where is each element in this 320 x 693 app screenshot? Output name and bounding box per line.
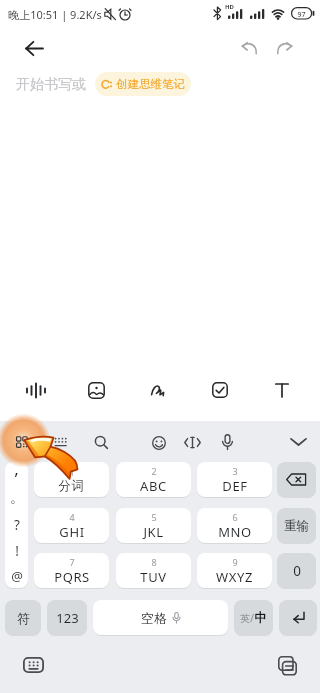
button[interactable] xyxy=(146,378,171,403)
staticText: ! xyxy=(15,542,19,560)
staticText: 123 xyxy=(56,609,79,627)
staticText: 分词 xyxy=(58,478,85,494)
staticText: / xyxy=(250,611,254,625)
button[interactable]: , xyxy=(5,462,28,588)
button[interactable]: 0 xyxy=(277,553,316,588)
staticText: 符 xyxy=(17,610,30,626)
button[interactable] xyxy=(21,37,48,60)
button[interactable]: 6 xyxy=(197,508,272,543)
button[interactable]: 5 xyxy=(116,508,191,543)
staticText: @ xyxy=(11,567,23,585)
button[interactable]: 9 xyxy=(197,553,272,588)
button[interactable] xyxy=(209,2,226,25)
button[interactable] xyxy=(286,434,311,450)
button[interactable]: 4 xyxy=(34,508,109,543)
staticText: 空格 xyxy=(141,610,167,626)
button[interactable] xyxy=(90,431,113,454)
staticText: 9 xyxy=(232,556,238,568)
button[interactable] xyxy=(287,3,319,24)
staticText: 6 xyxy=(232,511,238,523)
staticText: 英 xyxy=(240,612,250,625)
button[interactable]: 空格 xyxy=(93,600,228,635)
staticText: 中 xyxy=(254,610,267,626)
button[interactable]: 8 xyxy=(116,553,191,588)
button[interactable] xyxy=(237,37,262,59)
button[interactable] xyxy=(148,432,170,454)
staticText: 1 xyxy=(69,466,75,478)
staticText: 4 xyxy=(69,511,75,523)
button[interactable] xyxy=(22,378,50,403)
button[interactable] xyxy=(114,4,136,25)
staticText: , xyxy=(14,462,19,480)
staticText: 7 xyxy=(69,556,75,568)
staticText: TUV xyxy=(140,568,167,586)
button[interactable]: 7 xyxy=(34,553,109,588)
staticText: 0 xyxy=(293,562,301,580)
staticText: PQRS xyxy=(54,568,90,586)
staticText: 。 xyxy=(10,489,24,507)
staticText: MNO xyxy=(218,523,252,541)
button[interactable] xyxy=(50,433,72,452)
staticText: ? xyxy=(14,516,20,534)
button[interactable]: 重输 xyxy=(277,508,316,543)
button[interactable] xyxy=(208,378,232,402)
button[interactable] xyxy=(246,4,270,24)
staticText: 2 xyxy=(151,465,157,477)
button[interactable] xyxy=(279,600,317,635)
button[interactable] xyxy=(272,37,297,59)
staticText: GHI xyxy=(59,523,85,541)
button[interactable] xyxy=(217,430,238,455)
button[interactable] xyxy=(19,653,48,677)
staticText: 重输 xyxy=(284,518,309,534)
staticText: 晚上10:51 | 9.2K/s xyxy=(8,7,102,22)
staticText: ABC xyxy=(140,477,167,495)
staticText: 开始书写或 xyxy=(16,76,86,94)
staticText: JKL xyxy=(143,523,164,541)
staticText: DEF xyxy=(222,477,248,495)
button[interactable] xyxy=(100,4,121,25)
staticText: 创建思维笔记 xyxy=(116,77,185,91)
staticText: 3 xyxy=(232,465,238,477)
staticText: 97 xyxy=(291,10,312,19)
button[interactable]: 符 xyxy=(5,600,41,635)
button[interactable]: 2 xyxy=(116,462,191,497)
button[interactable] xyxy=(271,379,293,402)
button[interactable] xyxy=(277,462,316,497)
button[interactable]: 1 xyxy=(34,462,109,497)
button[interactable]: 英 xyxy=(234,600,273,635)
staticText: WXYZ xyxy=(216,568,253,586)
button[interactable] xyxy=(274,652,301,679)
button[interactable]: 创建思维笔记 xyxy=(95,72,191,96)
staticText: 8 xyxy=(151,556,157,568)
button[interactable] xyxy=(84,378,109,403)
button[interactable] xyxy=(10,430,34,454)
staticText: HD xyxy=(225,3,234,11)
button[interactable] xyxy=(180,432,205,453)
button[interactable]: 123 xyxy=(47,600,87,635)
button[interactable] xyxy=(224,4,248,24)
button[interactable] xyxy=(265,3,291,25)
button[interactable]: 3 xyxy=(197,462,272,497)
staticText: 5 xyxy=(151,511,157,523)
